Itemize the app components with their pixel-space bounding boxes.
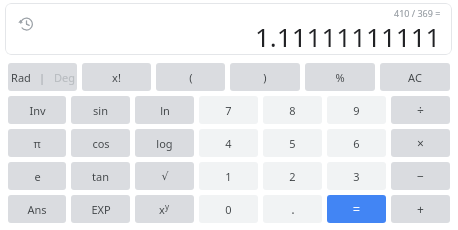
staticText: Deg <box>54 70 75 85</box>
staticText: Inv <box>29 103 46 118</box>
staticText: log <box>156 136 173 151</box>
button[interactable]: 9 <box>327 96 386 124</box>
button[interactable]: sin <box>71 96 130 124</box>
button[interactable]: 2 <box>263 162 322 190</box>
button[interactable]: x <box>135 195 194 223</box>
button[interactable]: √ <box>135 162 194 190</box>
staticText: √ <box>161 170 169 183</box>
staticText: y <box>165 201 170 212</box>
button[interactable]: Equals <box>327 195 386 223</box>
staticText: ) <box>263 70 267 85</box>
staticText: ( <box>189 70 193 85</box>
staticText: 1.11111111111 <box>255 19 441 54</box>
staticText: 1 <box>225 169 232 184</box>
staticText: 5 <box>289 136 296 151</box>
staticText: 2 <box>289 169 296 184</box>
button[interactable]: 5 <box>263 129 322 157</box>
button[interactable]: AC <box>380 63 450 91</box>
button[interactable]: cos <box>71 129 130 157</box>
button[interactable]: . <box>263 195 322 223</box>
staticText: . <box>291 200 295 218</box>
button[interactable]: Ans <box>8 195 66 223</box>
staticText: 3 <box>353 169 360 184</box>
staticText: Rad <box>11 70 31 85</box>
staticText: 8 <box>289 103 296 118</box>
staticText: e <box>34 169 41 184</box>
button[interactable]: x! <box>82 63 151 91</box>
button[interactable]: ln <box>135 96 194 124</box>
button[interactable]: 3 <box>327 162 386 190</box>
staticText: 6 <box>353 136 360 151</box>
staticText: EXP <box>91 202 111 217</box>
staticText: × <box>417 135 424 151</box>
staticText: ÷ <box>417 102 424 118</box>
staticText: x <box>159 202 165 217</box>
staticText: + <box>417 201 424 217</box>
staticText: x! <box>112 70 121 85</box>
button[interactable]: tan <box>71 162 130 190</box>
staticText: | <box>39 70 46 85</box>
staticText: = <box>353 201 360 217</box>
button[interactable]: 0 <box>199 195 258 223</box>
staticText: − <box>417 168 424 184</box>
staticText: AC <box>408 70 422 85</box>
staticText: % <box>335 70 345 85</box>
staticText: cos <box>92 136 110 151</box>
button[interactable]: 4 <box>199 129 258 157</box>
button[interactable]: 1 <box>199 162 258 190</box>
staticText: π <box>33 136 41 151</box>
button[interactable]: log <box>135 129 194 157</box>
button[interactable]: Multiply <box>391 129 450 157</box>
button[interactable]: 8 <box>263 96 322 124</box>
button[interactable]: ( <box>156 63 225 91</box>
staticText: tan <box>92 169 109 184</box>
staticText: 0 <box>225 202 232 217</box>
staticText: sin <box>93 103 108 118</box>
button[interactable]: % <box>305 63 375 91</box>
button[interactable]: Divide <box>391 96 450 124</box>
button[interactable]: 7 <box>199 96 258 124</box>
button[interactable]: EXP <box>71 195 130 223</box>
staticText: ln <box>160 103 170 118</box>
button[interactable]: π <box>8 129 66 157</box>
button[interactable]: Minus <box>391 162 450 190</box>
button[interactable]: Inv <box>8 96 66 124</box>
button[interactable]: e <box>8 162 66 190</box>
button[interactable]: Plus <box>391 195 450 223</box>
staticText: 4 <box>225 136 232 151</box>
button[interactable]: Rad <box>8 63 77 91</box>
staticText: 7 <box>225 103 232 118</box>
button[interactable]: 6 <box>327 129 386 157</box>
staticText: 410 / 369 = <box>394 7 441 19</box>
staticText: 9 <box>353 103 360 118</box>
button[interactable]: ) <box>230 63 300 91</box>
button[interactable]: History <box>16 13 36 33</box>
staticText: Ans <box>27 202 47 217</box>
